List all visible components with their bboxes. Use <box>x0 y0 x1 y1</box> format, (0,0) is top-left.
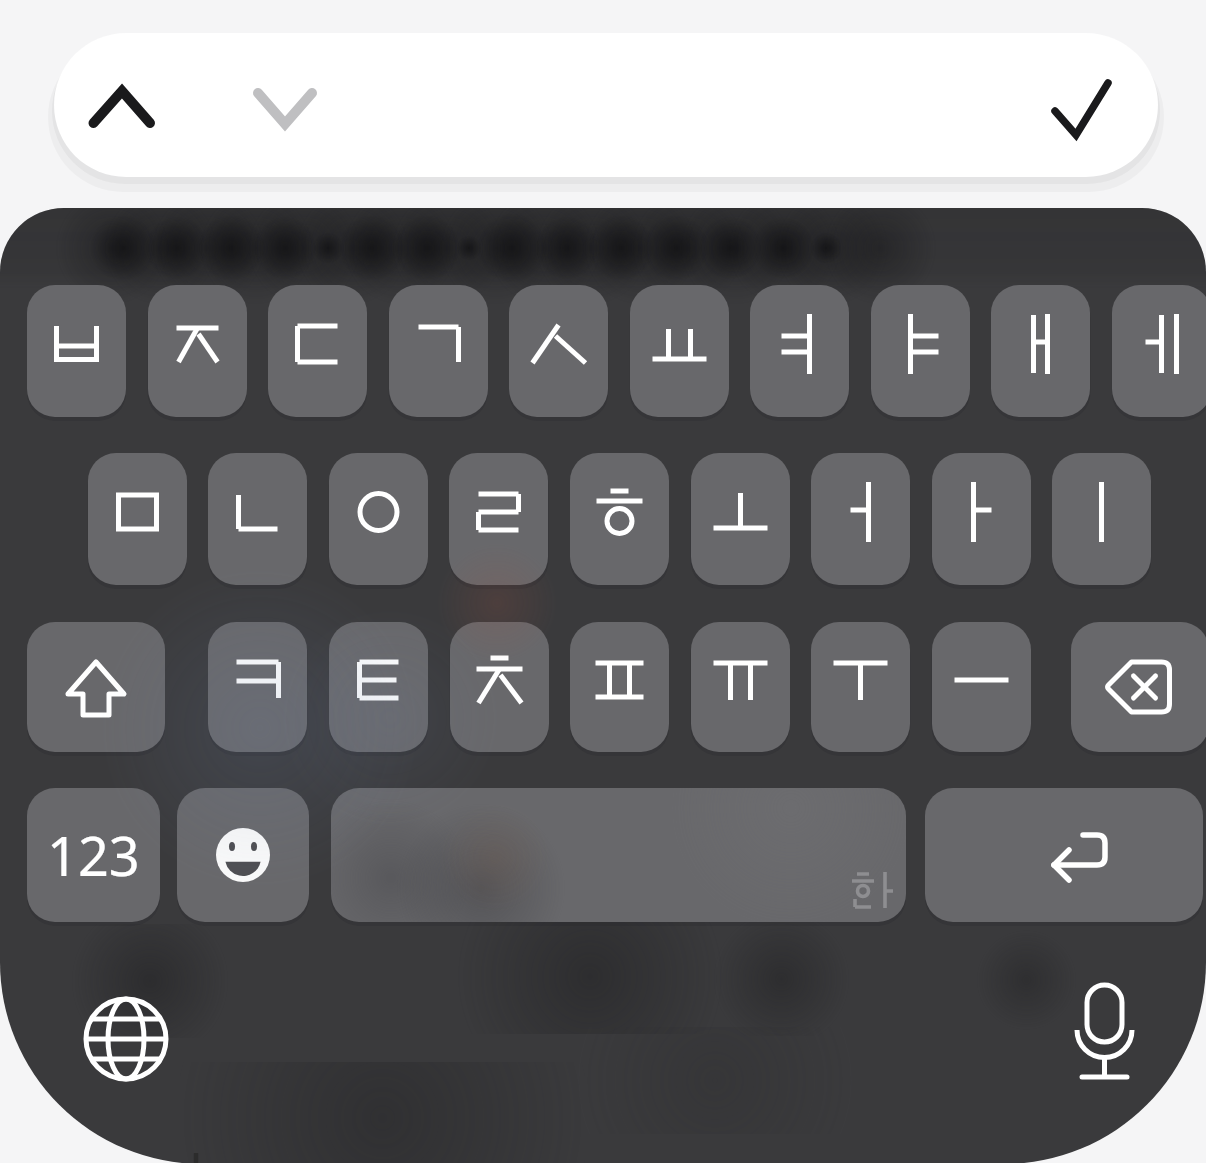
button[interactable] <box>268 285 367 417</box>
button[interactable] <box>240 62 332 152</box>
button[interactable] <box>811 453 910 585</box>
button[interactable] <box>811 622 910 752</box>
button[interactable] <box>1052 453 1151 585</box>
button[interactable] <box>27 285 126 417</box>
button[interactable] <box>871 285 970 417</box>
staticText: 123 <box>47 818 140 892</box>
button[interactable]: 123 <box>27 788 160 922</box>
button[interactable] <box>691 453 790 585</box>
button[interactable] <box>148 285 247 417</box>
button[interactable] <box>630 285 729 417</box>
button[interactable] <box>925 788 1203 922</box>
button[interactable] <box>570 453 669 585</box>
button[interactable] <box>570 622 669 752</box>
button[interactable] <box>750 285 849 417</box>
button[interactable] <box>450 622 549 752</box>
button[interactable] <box>932 622 1031 752</box>
button[interactable] <box>329 622 428 752</box>
button[interactable] <box>389 285 488 417</box>
button[interactable] <box>1071 622 1206 752</box>
button[interactable] <box>1064 984 1146 1080</box>
button[interactable] <box>932 453 1031 585</box>
button[interactable] <box>1112 285 1206 417</box>
button[interactable] <box>329 453 428 585</box>
button[interactable] <box>77 62 169 152</box>
button[interactable] <box>331 788 906 922</box>
button[interactable] <box>177 788 309 922</box>
button[interactable] <box>88 453 187 585</box>
button[interactable] <box>27 622 165 752</box>
button[interactable] <box>691 622 790 752</box>
button[interactable] <box>86 998 168 1080</box>
button[interactable] <box>991 285 1090 417</box>
button[interactable] <box>509 285 608 417</box>
button[interactable] <box>208 622 307 752</box>
button[interactable] <box>449 453 548 585</box>
button[interactable] <box>208 453 307 585</box>
button[interactable] <box>1031 63 1123 153</box>
